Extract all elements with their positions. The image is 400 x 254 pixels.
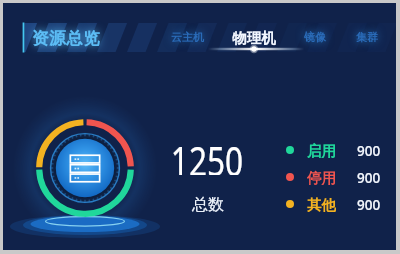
button[interactable]: 其他: [286, 196, 381, 212]
staticText: 镜像: [304, 30, 326, 44]
button[interactable]: 停用: [286, 169, 381, 185]
staticText: 物理机: [232, 29, 276, 47]
button[interactable]: 集群: [339, 28, 395, 46]
button[interactable]: 镜像: [287, 28, 343, 46]
staticText: 总数: [192, 195, 224, 215]
staticText: 900: [357, 142, 381, 158]
staticText: 其他: [307, 196, 336, 212]
staticText: 1250: [171, 133, 243, 175]
staticText: 900: [357, 169, 381, 185]
staticText: 900: [357, 196, 381, 212]
button[interactable]: 云主机: [159, 28, 215, 46]
button[interactable]: 物理机: [226, 28, 282, 48]
staticText: 云主机: [171, 30, 204, 44]
button[interactable]: 资源总览: [32, 28, 101, 49]
staticText: 集群: [356, 30, 378, 44]
staticText: 资源总览: [32, 28, 101, 49]
staticText: 停用: [307, 169, 336, 185]
staticText: 启用: [307, 142, 336, 158]
button[interactable]: 启用: [286, 142, 381, 158]
